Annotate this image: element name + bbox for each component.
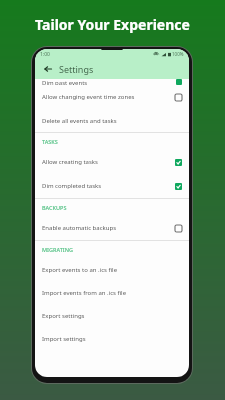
staticText: Allow creating tasks: [42, 158, 175, 166]
staticText: Allow changing event time zones: [42, 93, 175, 101]
staticText: MIGRATING: [42, 246, 73, 253]
staticText: Dim completed tasks: [42, 182, 175, 190]
staticText: Settings: [59, 63, 94, 75]
staticText: Export settings: [42, 312, 85, 320]
staticText: Export events to an .ics file: [42, 266, 118, 274]
staticText: Enable automatic backups: [42, 224, 175, 232]
staticText: Tailor Your Experience: [0, 15, 225, 34]
button[interactable]: Allow creating tasks: [35, 150, 189, 174]
staticText: Delete all events and tasks: [42, 117, 117, 125]
staticText: Import events from an .ics file: [42, 289, 127, 297]
staticText: TASKS: [42, 138, 58, 145]
button[interactable]: Delete all events and tasks: [35, 109, 189, 132]
button[interactable]: Export settings: [35, 304, 189, 327]
button[interactable]: Enable automatic backups: [35, 216, 189, 240]
staticText: BACKUPS: [42, 204, 67, 211]
button[interactable]: Export events to an .ics file: [35, 258, 189, 281]
button[interactable]: Import events from an .ics file: [35, 281, 189, 304]
staticText: Dim past events: [42, 79, 88, 85]
button[interactable]: Dim completed tasks: [35, 174, 189, 198]
button[interactable]: Back: [41, 62, 55, 76]
button[interactable]: Allow changing event time zones: [35, 85, 189, 109]
staticText: 100%: [172, 51, 184, 57]
staticText: 1:00: [40, 51, 50, 58]
staticText: Import settings: [42, 335, 86, 343]
button[interactable]: Dim past events: [35, 79, 189, 85]
button[interactable]: Import settings: [35, 327, 189, 350]
